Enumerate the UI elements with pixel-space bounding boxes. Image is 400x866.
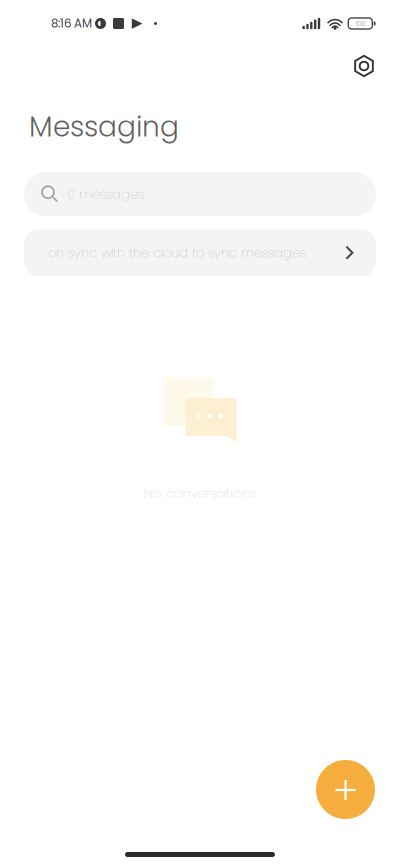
button[interactable]: Settings	[342, 44, 386, 88]
staticText: 8:16 AM	[51, 15, 92, 32]
button[interactable]: New message	[316, 760, 375, 819]
button[interactable]: on sync with the cloud to sync messages	[24, 229, 376, 276]
staticText: 0 messages	[67, 185, 144, 204]
staticText: 100	[355, 19, 365, 28]
staticText: No conversations	[143, 484, 256, 503]
staticText: on sync with the cloud to sync messages	[48, 244, 306, 262]
staticText: Messaging	[29, 107, 179, 146]
button[interactable]: 0 messages	[24, 172, 376, 216]
